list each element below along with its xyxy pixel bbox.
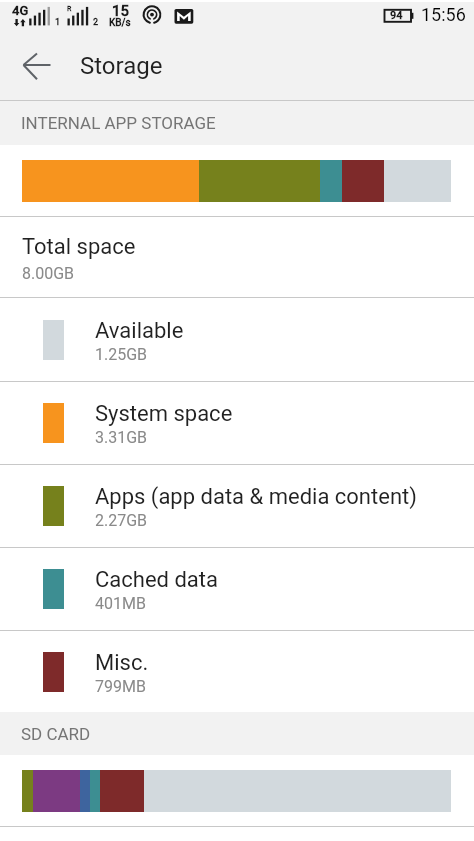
button[interactable]: Total space <box>0 217 474 297</box>
staticText: 401MB <box>95 594 146 613</box>
staticText: KB/s <box>109 17 131 29</box>
staticText: R <box>67 5 72 13</box>
staticText: 1 <box>55 17 61 28</box>
button[interactable]: Available <box>0 298 474 381</box>
button[interactable]: Apps (app data & media content) <box>0 465 474 547</box>
staticText: Available <box>95 318 184 344</box>
staticText: Apps (app data & media content) <box>95 484 417 510</box>
button[interactable]: System space <box>0 382 474 464</box>
staticText: 2.27GB <box>95 511 148 530</box>
staticText: 2 <box>93 17 99 28</box>
staticText: System space <box>95 401 233 427</box>
staticText: 3.31GB <box>95 428 148 447</box>
button[interactable]: Back <box>10 30 64 100</box>
staticText: INTERNAL APP STORAGE <box>21 113 216 133</box>
staticText: 1.25GB <box>95 345 148 364</box>
staticText: 15 <box>112 2 130 20</box>
staticText: 15:56 <box>421 4 466 25</box>
staticText: 4G <box>12 3 29 18</box>
staticText: 799MB <box>95 677 146 696</box>
staticText: Cached data <box>95 567 218 593</box>
staticText: 94 <box>390 9 403 22</box>
staticText: 8.00GB <box>22 264 75 283</box>
button[interactable]: Cached data <box>0 548 474 630</box>
staticText: SD CARD <box>21 724 91 744</box>
staticText: Misc. <box>95 650 149 676</box>
staticText: Storage <box>80 52 163 80</box>
button[interactable]: Misc. <box>0 631 474 712</box>
staticText: Total space <box>22 234 136 260</box>
